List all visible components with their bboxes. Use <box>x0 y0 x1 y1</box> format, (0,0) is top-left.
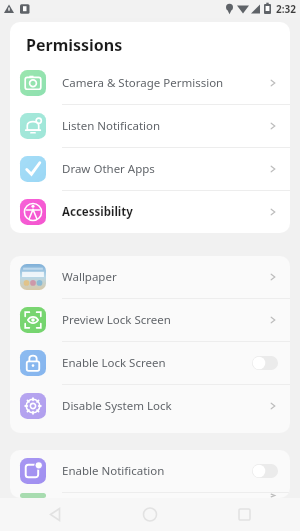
staticText: Wallpaper <box>62 269 268 285</box>
button[interactable]: Camera & Storage Permission <box>10 62 290 105</box>
staticText: Accessibility <box>62 204 268 220</box>
staticText: Permissions <box>26 34 123 56</box>
button[interactable]: Enable Lock Screen <box>10 342 290 385</box>
button[interactable] <box>252 356 278 370</box>
button[interactable]: Listen Notification <box>10 105 290 148</box>
staticText: Preview Lock Screen <box>62 312 268 328</box>
button[interactable]: Enable Notification <box>10 450 290 493</box>
button[interactable]: Accessibility <box>10 191 290 233</box>
staticText: Camera & Storage Permission <box>62 75 268 91</box>
button[interactable]: Draw Other Apps <box>10 148 290 191</box>
staticText: Listen Notification <box>62 118 268 134</box>
button[interactable]: Disable System Lock <box>10 385 290 427</box>
staticText: Enable Notification <box>62 463 252 479</box>
staticText: Disable System Lock <box>62 398 268 414</box>
staticText: Enable Lock Screen <box>62 355 252 371</box>
staticText: Draw Other Apps <box>62 161 268 177</box>
button[interactable] <box>252 464 278 478</box>
button[interactable]: Preview Lock Screen <box>10 299 290 342</box>
button[interactable]: Wallpaper <box>10 256 290 299</box>
button[interactable] <box>10 493 290 498</box>
staticText: 2:32 <box>276 2 296 16</box>
